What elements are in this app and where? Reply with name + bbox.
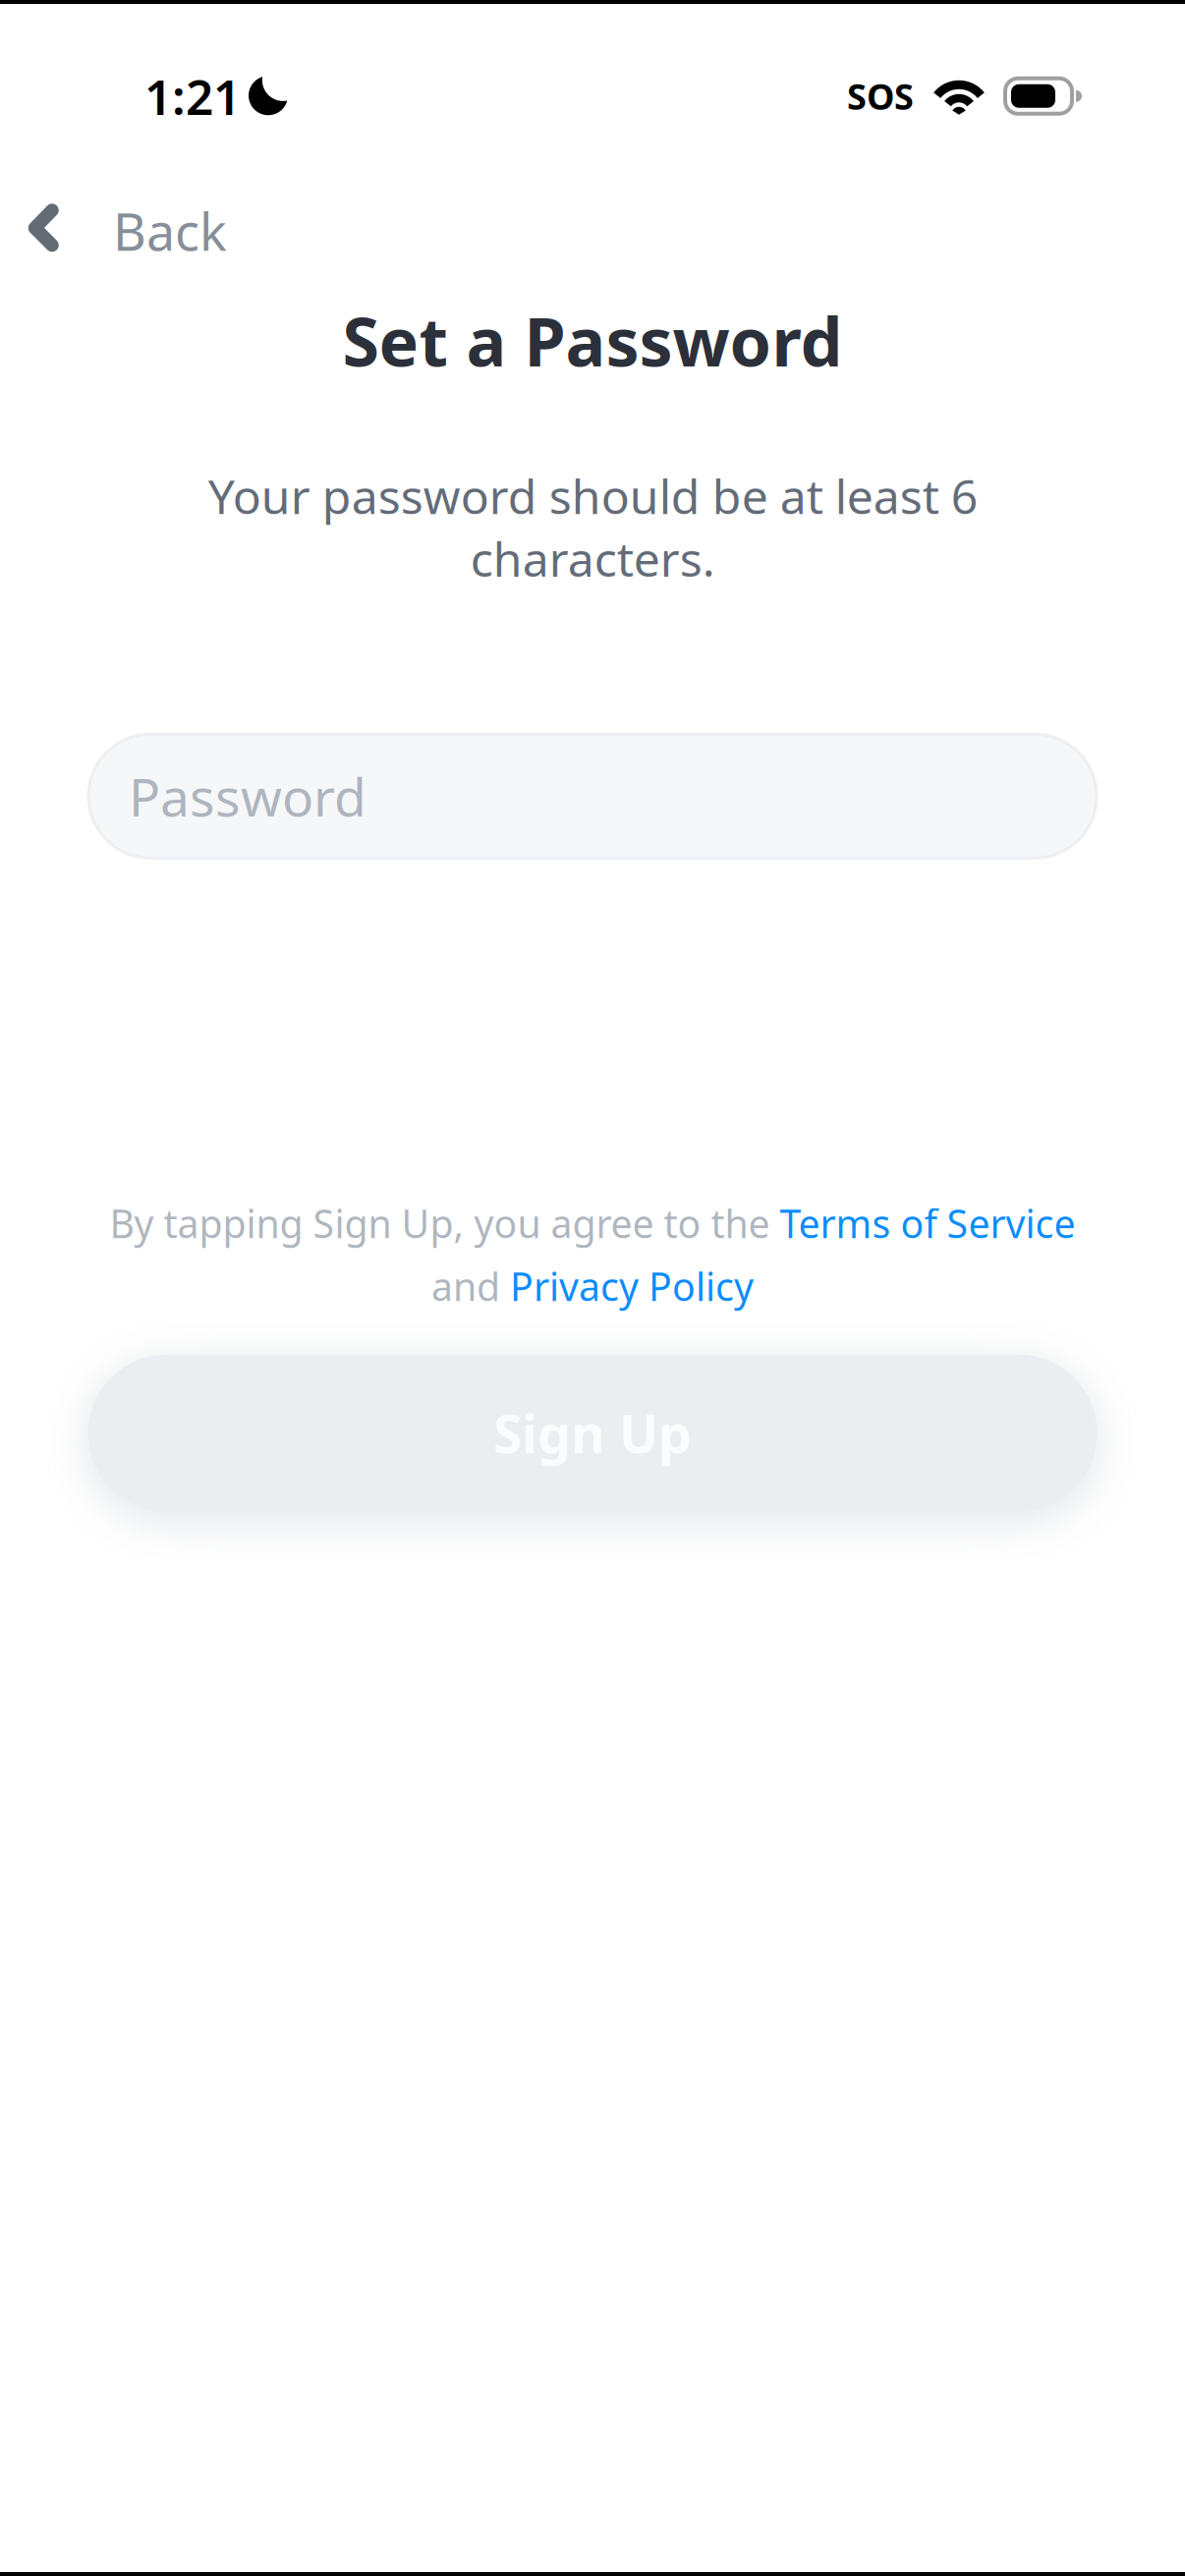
staticText: and xyxy=(431,1260,510,1312)
staticText: SOS xyxy=(847,73,914,120)
staticText: Set a Password xyxy=(342,296,843,385)
staticText: Password xyxy=(129,761,367,831)
staticText: Sign Up xyxy=(493,1398,692,1468)
staticText: 1:21 xyxy=(144,64,241,128)
button[interactable]: Back xyxy=(0,179,227,283)
staticText: Terms of Service xyxy=(780,1198,1075,1249)
staticText: Back xyxy=(113,197,227,265)
button[interactable]: Privacy Policy xyxy=(510,1260,754,1312)
button[interactable]: Terms of Service xyxy=(780,1198,1075,1249)
staticText: By tapping Sign Up, you agree to the xyxy=(110,1198,780,1249)
staticText: Your password should be at least 6 chara… xyxy=(208,465,977,590)
staticText: Privacy Policy xyxy=(510,1260,754,1312)
button[interactable]: Sign Up xyxy=(88,1355,1097,1511)
